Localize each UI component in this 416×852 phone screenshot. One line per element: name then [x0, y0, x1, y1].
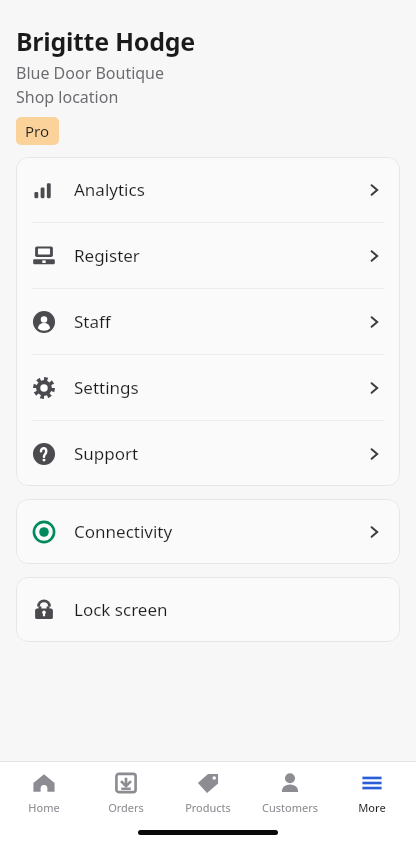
staticText: Products — [185, 800, 231, 815]
staticText: Lock screen — [74, 598, 168, 621]
staticText: More — [358, 800, 386, 815]
staticText: Settings — [74, 376, 139, 399]
button[interactable]: Lock screen — [16, 577, 400, 642]
other: Customers — [278, 771, 302, 795]
button[interactable]: Connectivity — [16, 499, 400, 564]
staticText: Staff — [74, 310, 111, 333]
staticText: Orders — [108, 800, 144, 815]
button[interactable]: Analytics — [16, 157, 400, 222]
staticText: Pro — [25, 121, 50, 141]
other: Products — [196, 771, 220, 795]
other: More — [360, 771, 384, 795]
staticText: Brigitte Hodge — [16, 24, 195, 58]
staticText: Connectivity — [74, 520, 173, 543]
staticText: Home — [28, 800, 60, 815]
button[interactable]: Staff — [16, 289, 400, 354]
staticText: Support — [74, 442, 139, 465]
staticText: Shop location — [16, 86, 119, 108]
other: Orders — [114, 771, 138, 795]
button[interactable]: Orders — [88, 767, 164, 819]
staticText: Analytics — [74, 178, 145, 201]
button[interactable]: Products — [170, 767, 246, 819]
staticText: Customers — [262, 800, 318, 815]
button[interactable]: Settings — [16, 355, 400, 420]
button[interactable]: More — [334, 767, 410, 819]
other: Home — [32, 771, 56, 795]
button[interactable]: Support — [16, 421, 400, 486]
button[interactable]: Register — [16, 223, 400, 288]
button[interactable]: Home — [6, 767, 82, 819]
staticText: Blue Door Boutique — [16, 62, 165, 84]
staticText: Register — [74, 244, 140, 267]
button[interactable]: Customers — [252, 767, 328, 819]
